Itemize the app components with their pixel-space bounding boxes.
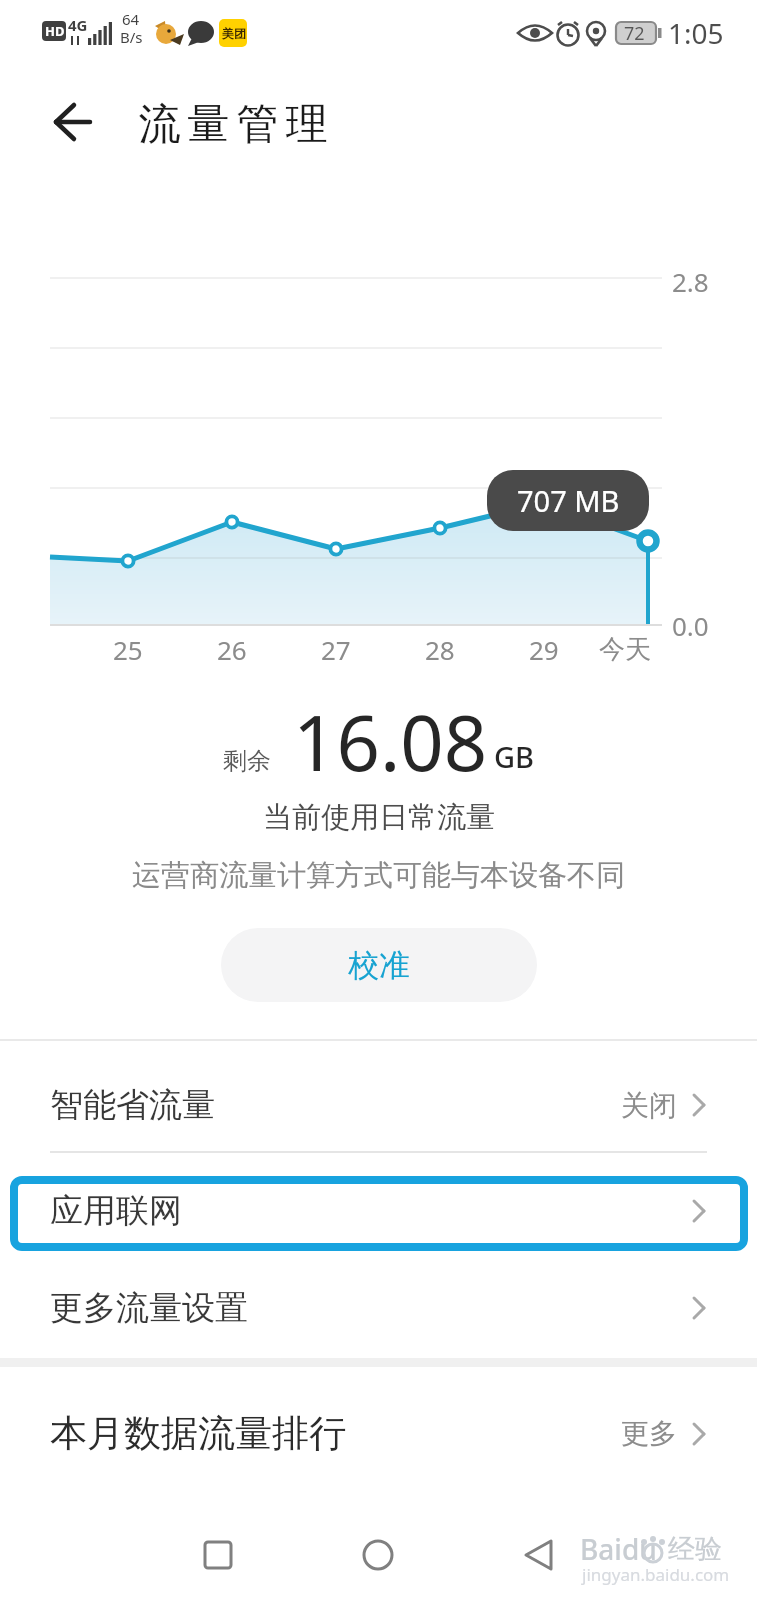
staticText: 27 xyxy=(321,632,351,667)
staticText: 29 xyxy=(529,632,559,667)
staticText: HD xyxy=(45,22,65,40)
staticText: 72 xyxy=(624,21,645,46)
staticText: 关闭 xyxy=(621,1088,677,1123)
staticText: 64 xyxy=(122,9,140,29)
staticText: 校准 xyxy=(348,946,410,985)
button[interactable] xyxy=(40,92,112,154)
button[interactable]: 本月数据流量排行 xyxy=(0,1383,757,1483)
staticText: B/s xyxy=(120,27,143,47)
staticText: 剩余 xyxy=(223,746,271,776)
staticText: 流量管理 xyxy=(135,98,331,151)
staticText: Baidu xyxy=(580,1530,657,1568)
staticText: 707 MB xyxy=(517,481,620,520)
button[interactable]: 应用联网 xyxy=(0,1153,757,1259)
staticText: 应用联网 xyxy=(50,1190,182,1232)
button[interactable] xyxy=(338,1515,418,1595)
staticText: 智能省流量 xyxy=(50,1084,215,1126)
staticText: 当前使用日常流量 xyxy=(263,799,495,836)
button[interactable]: 智能省流量 xyxy=(0,1041,757,1151)
staticText: 运营商流量计算方式可能与本设备不同 xyxy=(132,857,625,894)
staticText: 美团 xyxy=(222,26,246,41)
staticText: 1:05 xyxy=(668,14,724,52)
button[interactable] xyxy=(178,1515,258,1595)
staticText: 经验 xyxy=(668,1532,722,1566)
staticText: 28 xyxy=(425,632,455,667)
staticText: jingyan.baidu.com xyxy=(582,1563,730,1586)
staticText: 本月数据流量排行 xyxy=(50,1410,346,1457)
staticText: 2.8 xyxy=(672,264,709,299)
button[interactable]: 更多流量设置 xyxy=(0,1261,757,1358)
staticText: 25 xyxy=(113,632,143,667)
staticText: 0.0 xyxy=(672,608,709,643)
button[interactable] xyxy=(498,1515,578,1595)
staticText: 16.08 xyxy=(293,690,488,794)
button[interactable]: 校准 xyxy=(221,928,537,1002)
staticText: 更多流量设置 xyxy=(50,1287,248,1329)
staticText: 更多 xyxy=(621,1416,677,1451)
staticText: GB xyxy=(494,737,535,776)
staticText: 今天 xyxy=(599,633,651,666)
staticText: 4G xyxy=(68,15,88,35)
staticText: 26 xyxy=(217,632,247,667)
